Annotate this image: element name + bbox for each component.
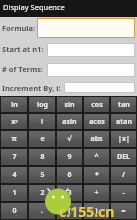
button[interactable]: 3 xyxy=(57,185,82,201)
button[interactable]: 9 xyxy=(57,149,82,165)
staticText: sin xyxy=(64,100,75,110)
button[interactable]: π xyxy=(1,131,27,147)
staticText: atan xyxy=(116,117,132,127)
button[interactable]: xʸ xyxy=(1,114,27,129)
staticText: ! xyxy=(41,117,43,127)
button[interactable]: = xyxy=(111,203,136,219)
staticText: π xyxy=(11,134,17,144)
button[interactable]: 6 xyxy=(57,167,82,183)
staticText: 5 xyxy=(40,170,45,180)
button[interactable]: asin xyxy=(57,114,82,129)
button[interactable]: - xyxy=(111,185,136,201)
staticText: e xyxy=(40,134,45,144)
staticText: . xyxy=(41,206,43,216)
staticText: cos xyxy=(91,100,103,110)
staticText: ( xyxy=(68,206,71,216)
button[interactable]: ln xyxy=(1,97,27,112)
button[interactable]: / xyxy=(111,167,136,183)
button[interactable]: sin xyxy=(57,97,82,112)
staticText: √ xyxy=(67,135,72,143)
staticText: asin xyxy=(62,117,77,127)
button[interactable]: 5 xyxy=(29,167,55,183)
staticText: log xyxy=(37,100,48,110)
button[interactable]: tan xyxy=(111,97,136,112)
staticText: xʸ xyxy=(11,117,18,127)
button[interactable]: DEL xyxy=(111,149,136,165)
staticText: 3 xyxy=(67,188,72,198)
staticText: 2 xyxy=(40,188,45,198)
button[interactable]: cos xyxy=(84,97,109,112)
button[interactable] xyxy=(47,43,135,57)
button[interactable]: ) xyxy=(84,203,109,219)
button[interactable] xyxy=(64,82,135,93)
staticText: 0 xyxy=(12,206,17,216)
staticText: Increment By, i: xyxy=(2,83,61,93)
button[interactable]: + xyxy=(84,185,109,201)
staticText: DEL xyxy=(117,152,130,162)
staticText: Formula: xyxy=(2,23,36,33)
staticText: # of Terms: xyxy=(2,64,44,74)
button[interactable]: 4 xyxy=(1,167,27,183)
staticText: ) xyxy=(95,206,98,216)
staticText: Display Sequence xyxy=(3,2,65,12)
button[interactable]: abs xyxy=(84,131,109,147)
staticText: abs xyxy=(90,134,103,144)
button[interactable]: 8 xyxy=(29,149,55,165)
button[interactable]: ( xyxy=(57,203,82,219)
button[interactable]: * xyxy=(84,167,109,183)
staticText: 8 xyxy=(40,152,45,162)
staticText: ^ xyxy=(94,152,99,162)
staticText: 6 xyxy=(67,170,72,180)
button[interactable]: |x| xyxy=(111,131,136,147)
staticText: = xyxy=(121,206,126,216)
staticText: + xyxy=(94,188,99,198)
button[interactable]: √ xyxy=(57,131,82,147)
button[interactable] xyxy=(47,63,135,77)
staticText: * xyxy=(95,170,99,180)
staticText: 1 xyxy=(12,188,17,198)
button[interactable]: atan xyxy=(111,114,136,129)
button[interactable]: ! xyxy=(29,114,55,129)
button[interactable]: ^ xyxy=(84,149,109,165)
staticText: 4 xyxy=(12,170,17,180)
button[interactable]: 0 xyxy=(1,203,27,219)
button[interactable]: 1 xyxy=(1,185,27,201)
staticText: ln xyxy=(11,100,18,110)
staticText: Start at n1: xyxy=(2,44,44,54)
button[interactable]: 7 xyxy=(1,149,27,165)
button[interactable] xyxy=(37,18,135,38)
button[interactable]: acos xyxy=(84,114,109,129)
staticText: / xyxy=(122,170,125,180)
staticText: - xyxy=(122,188,125,198)
staticText: |x| xyxy=(118,134,130,144)
staticText: 7 xyxy=(12,152,17,162)
staticText: c.155.cn xyxy=(59,202,115,220)
button[interactable]: e xyxy=(29,131,55,147)
button[interactable]: log xyxy=(29,97,55,112)
staticText: 9 xyxy=(67,152,72,162)
button[interactable]: . xyxy=(29,203,55,219)
staticText: acos xyxy=(89,117,105,127)
staticText: tan xyxy=(118,100,130,110)
button[interactable]: 2 xyxy=(29,185,55,201)
